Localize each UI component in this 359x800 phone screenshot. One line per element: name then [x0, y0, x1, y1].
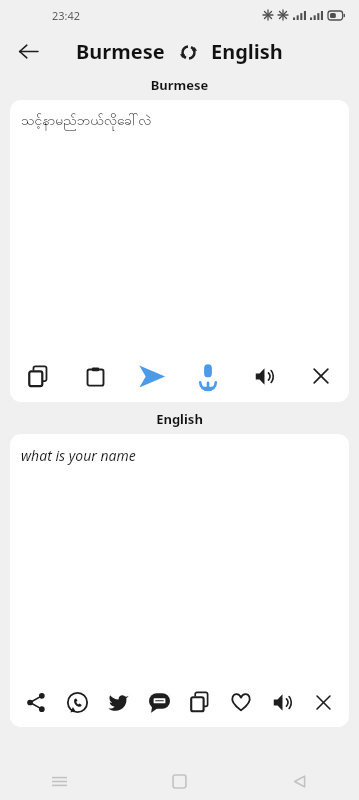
button[interactable]: Swap languages [175, 39, 201, 65]
button[interactable]: Speak [262, 682, 302, 722]
button[interactable]: Voice input [188, 356, 228, 396]
staticText: Burmese [0, 76, 359, 94]
staticText: သင့်နာမည်ဘယ်လိုခေါ်လဲ [21, 111, 152, 132]
button[interactable]: Paste [75, 356, 115, 396]
button[interactable]: Favourite [221, 682, 261, 722]
button[interactable]: Recents [0, 762, 119, 800]
button[interactable]: Clear [301, 356, 341, 396]
button[interactable]: Back [8, 31, 48, 71]
button[interactable]: Translate [131, 356, 171, 396]
button[interactable]: Share [16, 682, 56, 722]
button[interactable]: Back [239, 762, 359, 800]
button[interactable]: Home [119, 762, 239, 800]
button[interactable]: Speak [244, 356, 284, 396]
button[interactable]: Clear [303, 682, 343, 722]
staticText: what is your name [21, 446, 136, 465]
button[interactable]: English [211, 38, 283, 65]
button[interactable]: Burmese [76, 38, 165, 65]
button[interactable]: Twitter [98, 682, 138, 722]
button[interactable]: Copy [18, 356, 58, 396]
button[interactable]: SMS [139, 682, 179, 722]
staticText: English [0, 410, 359, 428]
button[interactable]: WhatsApp [57, 682, 97, 722]
button[interactable]: Copy [180, 682, 220, 722]
staticText: 23:42 [52, 8, 81, 23]
